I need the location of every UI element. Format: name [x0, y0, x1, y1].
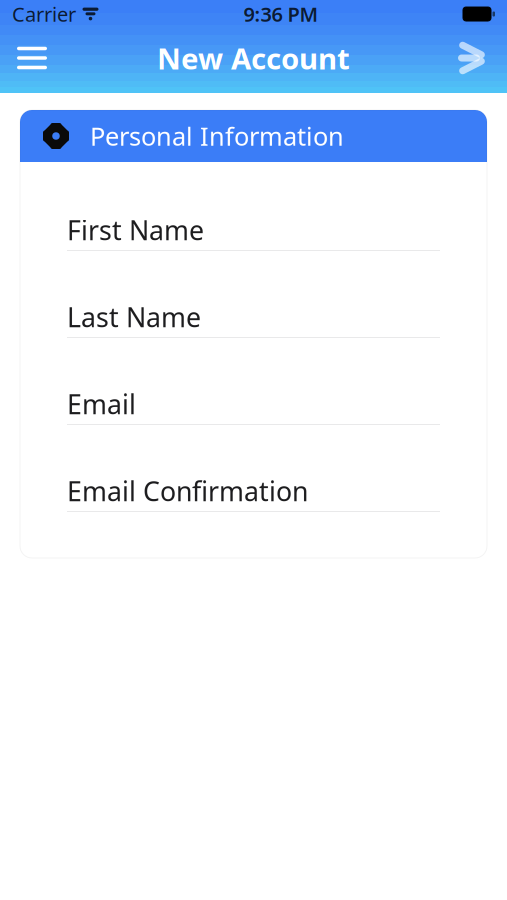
button[interactable]: First Name — [20, 162, 487, 251]
button[interactable]: Email Confirmation — [20, 425, 487, 512]
staticText: Email Confirmation — [67, 473, 308, 509]
button[interactable]: Last Name — [20, 251, 487, 338]
staticText: Personal Information — [90, 119, 344, 153]
staticText: Last Name — [67, 299, 201, 335]
staticText: 9:36 PM — [243, 1, 318, 27]
staticText: New Account — [157, 38, 350, 77]
staticText: Email — [67, 386, 136, 422]
staticText: First Name — [67, 212, 204, 248]
button[interactable]: Menu — [6, 32, 58, 84]
staticText: Carrier — [12, 1, 76, 27]
button[interactable]: Submit — [449, 32, 501, 84]
button[interactable]: Email — [20, 338, 487, 425]
